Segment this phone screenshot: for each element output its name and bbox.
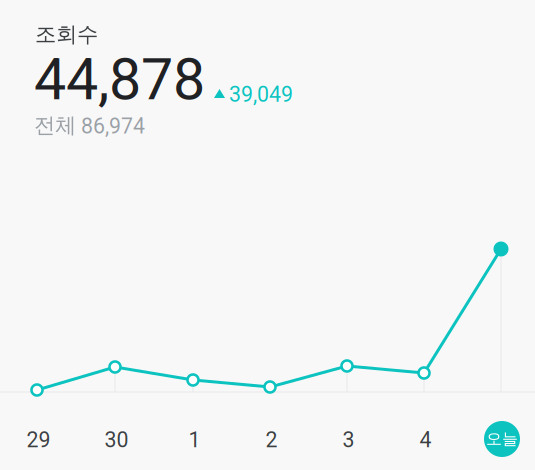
staticText: 30 — [104, 427, 128, 452]
staticText: 오늘 — [486, 429, 518, 449]
staticText: 3 — [342, 427, 354, 452]
staticText: 39,049 — [229, 82, 293, 107]
staticText: 2 — [265, 427, 277, 452]
button[interactable]: 오늘 — [484, 421, 520, 457]
staticText: 29 — [26, 427, 50, 452]
staticText: 1 — [188, 427, 200, 452]
staticText: 44,878 — [34, 46, 205, 113]
staticText: 조회수 — [35, 21, 98, 48]
staticText: 전체 86,974 — [34, 112, 145, 139]
staticText: 4 — [419, 427, 431, 452]
